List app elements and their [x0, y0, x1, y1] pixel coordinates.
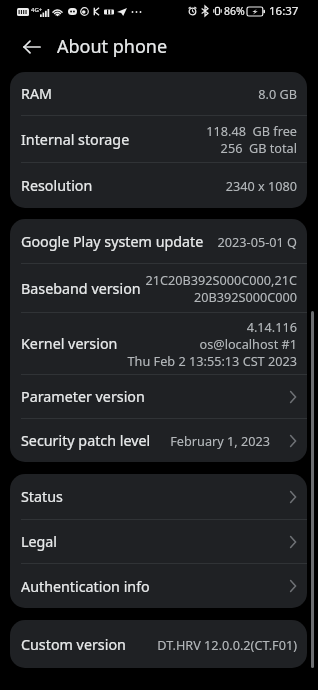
staticText: Legal [21, 532, 58, 551]
staticText: DT.HRV 12.0.0.2(CT.F01) [157, 636, 297, 653]
staticText: 4G+ [31, 6, 43, 14]
staticText: 2340 x 1080 [225, 177, 297, 194]
button[interactable]: Status [10, 474, 307, 519]
button[interactable]: RAM [10, 72, 307, 115]
button[interactable]: Resolution [10, 163, 307, 208]
staticText: 4.14.116 [246, 318, 297, 335]
staticText: 20B392S000C000 [193, 288, 297, 305]
staticText: 8.0 GB [258, 85, 297, 102]
staticText: Custom version [21, 635, 126, 654]
staticText: RAM [21, 84, 52, 103]
staticText: Internal storage [21, 130, 130, 149]
button[interactable]: Baseband version [10, 264, 307, 312]
button[interactable]: Kernel version [10, 313, 307, 374]
staticText: Parameter version [21, 387, 145, 406]
staticText: Resolution [21, 176, 93, 195]
staticText: Thu Feb 2 13:55:13 CST 2023 [127, 352, 297, 369]
staticText: Status [21, 487, 63, 506]
staticText: Google Play system update [21, 232, 204, 251]
staticText: 256 GB total [220, 139, 297, 156]
staticText: os@localhost #1 [199, 335, 297, 352]
button[interactable]: Authentication info [10, 564, 307, 608]
staticText: Authentication info [21, 577, 150, 596]
staticText: Baseband version [21, 279, 141, 298]
button[interactable]: Internal storage [10, 116, 307, 162]
staticText: 86% [224, 4, 245, 18]
staticText: 118.48 GB free [206, 122, 297, 139]
button[interactable]: Parameter version [10, 375, 307, 418]
staticText: About phone [57, 34, 168, 59]
button[interactable]: Google Play system update [10, 219, 307, 263]
staticText: Security patch level [21, 431, 151, 450]
button[interactable]: Back [19, 34, 45, 60]
staticText: February 1, 2023 [170, 432, 270, 449]
staticText: 2023-05-01 Q [217, 233, 297, 250]
button[interactable]: Custom version [10, 620, 307, 668]
staticText: Kernel version [21, 334, 118, 353]
staticText: 16:37 [269, 3, 299, 19]
staticText: 21C20B392S000C000,21C [145, 271, 297, 288]
button[interactable]: Security patch level [10, 419, 307, 462]
button[interactable]: Legal [10, 520, 307, 563]
